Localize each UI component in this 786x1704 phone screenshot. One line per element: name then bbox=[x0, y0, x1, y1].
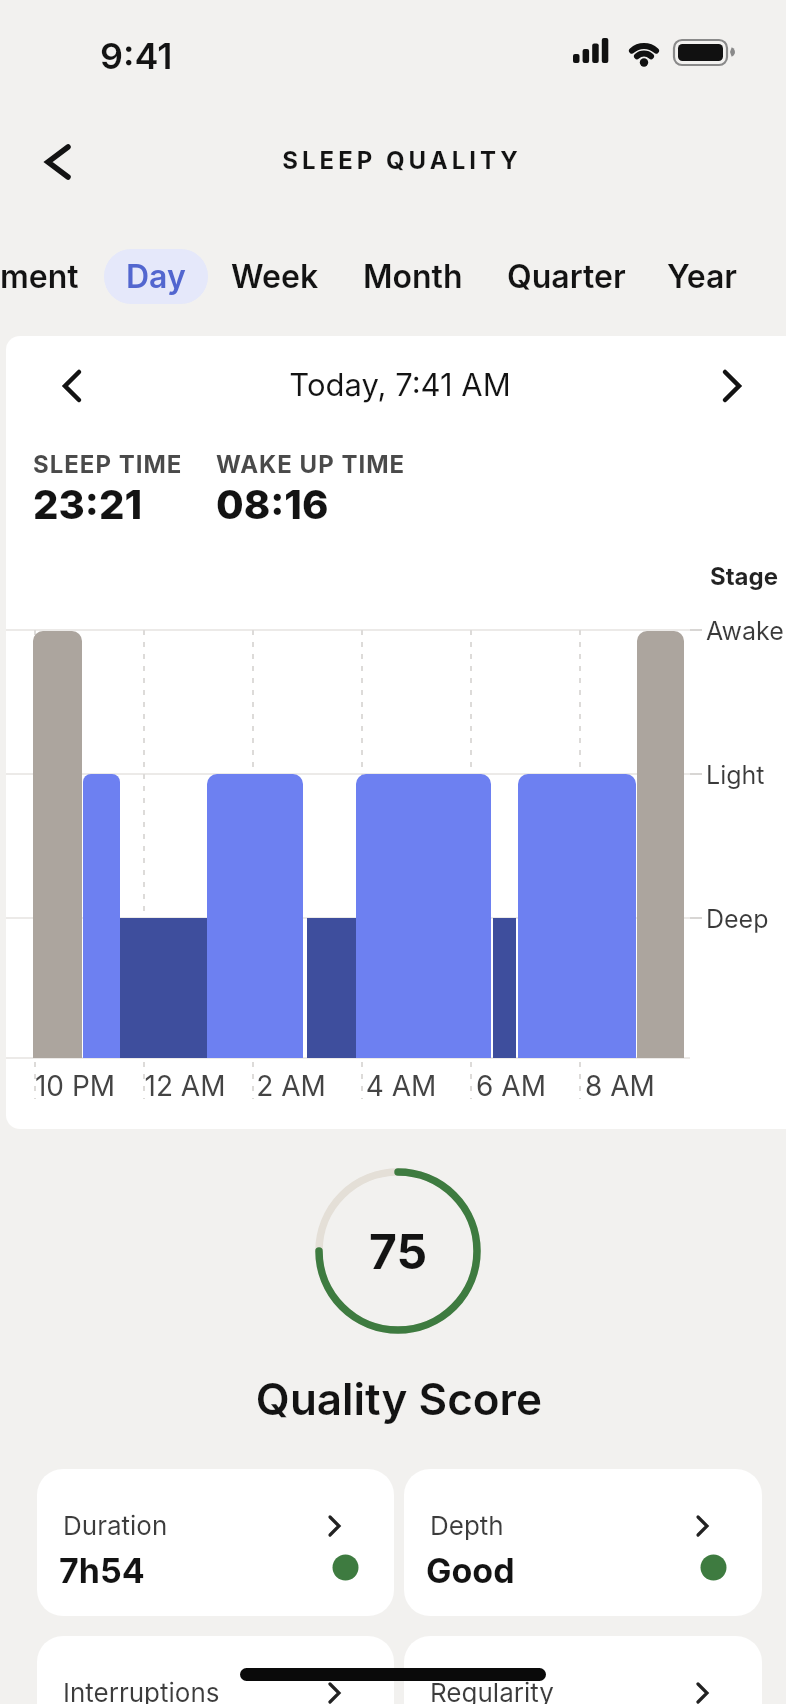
staticText: 4 AM bbox=[341, 1069, 461, 1103]
staticText: WAKE UP TIME bbox=[216, 450, 406, 479]
button[interactable] bbox=[51, 364, 95, 408]
staticText: 75 bbox=[369, 1222, 428, 1280]
staticText: Awake bbox=[706, 616, 784, 646]
staticText: Interruptions bbox=[63, 1677, 220, 1704]
staticText: 6 AM bbox=[451, 1069, 571, 1103]
staticText: Good bbox=[426, 1550, 515, 1591]
staticText: SLEEP TIME bbox=[33, 450, 183, 479]
staticText: SLEEP QUALITY bbox=[9, 146, 786, 175]
button[interactable]: Month bbox=[363, 257, 463, 296]
button[interactable]: ment bbox=[0, 257, 79, 296]
staticText: Light bbox=[706, 760, 765, 790]
button[interactable] bbox=[709, 364, 753, 408]
button[interactable]: Quarter bbox=[507, 257, 626, 296]
staticText: Stage bbox=[698, 562, 778, 591]
staticText: 7h54 bbox=[59, 1550, 145, 1591]
staticText: 10 PM bbox=[15, 1069, 135, 1103]
button[interactable]: Day bbox=[104, 249, 208, 304]
button[interactable]: Depth bbox=[404, 1469, 762, 1616]
staticText: 8 AM bbox=[560, 1069, 680, 1103]
staticText: 23:21 bbox=[33, 480, 143, 528]
staticText: Regularity bbox=[430, 1677, 554, 1704]
staticText: 08:16 bbox=[216, 480, 329, 528]
staticText: Deep bbox=[706, 904, 769, 934]
staticText: 2 AM bbox=[231, 1069, 351, 1103]
button[interactable]: Regularity bbox=[404, 1636, 762, 1704]
staticText: 12 AM bbox=[125, 1069, 245, 1103]
staticText: Today, 7:41 AM bbox=[10, 366, 786, 404]
staticText: Day bbox=[126, 257, 186, 296]
button[interactable] bbox=[36, 140, 80, 184]
button[interactable]: Duration bbox=[37, 1469, 394, 1616]
staticText: Duration bbox=[63, 1510, 168, 1541]
staticText: 9:41 bbox=[100, 34, 173, 78]
button[interactable]: Week bbox=[231, 257, 319, 296]
staticText: Quality Score bbox=[6, 1372, 786, 1425]
button[interactable]: Year bbox=[667, 257, 737, 296]
staticText: Depth bbox=[430, 1510, 504, 1541]
button[interactable]: Interruptions bbox=[37, 1636, 394, 1704]
